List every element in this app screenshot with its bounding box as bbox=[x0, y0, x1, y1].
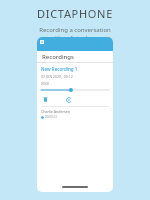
staticText: Recordings bbox=[42, 53, 75, 61]
button[interactable]: Delete recording bbox=[41, 95, 50, 104]
staticText: Charlie Andersen bbox=[41, 109, 71, 114]
button[interactable]: Seek position bbox=[41, 87, 109, 93]
staticText: 00:00:12 bbox=[45, 115, 57, 119]
button[interactable]: Play recording bbox=[64, 95, 73, 104]
staticText: New Recording 1 bbox=[41, 66, 78, 72]
button[interactable]: New Recording 1 bbox=[41, 66, 109, 119]
staticText: Recording a conversation with a dictapho… bbox=[39, 26, 111, 42]
staticText: DICTAPHONE bbox=[37, 6, 113, 21]
staticText: 00:00 bbox=[41, 82, 50, 86]
staticText: 02 JUN 2020, 09:12 bbox=[41, 74, 73, 79]
